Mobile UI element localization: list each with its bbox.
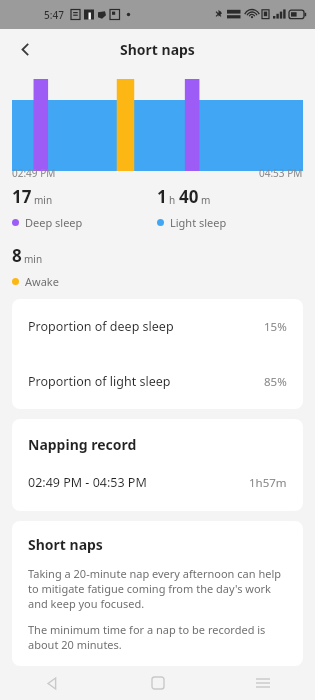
staticText: min: [24, 252, 43, 266]
staticText: Short naps: [28, 535, 103, 554]
staticText: Awake: [25, 274, 59, 289]
button[interactable]: Proportion of deep sleep: [12, 299, 303, 354]
staticText: Napping record: [28, 435, 137, 454]
staticText: Proportion of deep sleep: [28, 318, 174, 335]
button[interactable]: 02:49 PM - 04:53 PM: [28, 474, 287, 491]
staticText: m: [201, 193, 211, 207]
staticText: Taking a 20-minute nap every afternoon c…: [28, 566, 287, 611]
staticText: 02:49 PM - 04:53 PM: [28, 474, 147, 491]
staticText: Deep sleep: [25, 215, 83, 230]
staticText: 15%: [264, 319, 287, 335]
staticText: min: [34, 193, 53, 207]
button[interactable]: Home: [105, 666, 210, 700]
staticText: Short naps: [120, 40, 195, 59]
staticText: 1: [157, 185, 167, 208]
staticText: 85%: [264, 374, 287, 390]
button[interactable]: Recent apps: [210, 666, 315, 700]
staticText: 40: [179, 185, 199, 208]
staticText: 17: [12, 185, 32, 208]
staticText: 04:53 PM: [259, 166, 303, 180]
button[interactable]: Proportion of light sleep: [12, 354, 303, 409]
staticText: Proportion of light sleep: [28, 373, 171, 390]
staticText: h: [169, 193, 176, 207]
staticText: 5:47: [44, 8, 64, 22]
button[interactable]: Back: [0, 666, 105, 700]
button[interactable]: Back: [6, 30, 44, 68]
staticText: 1h57m: [249, 475, 287, 491]
staticText: The minimum time for a nap to be recorde…: [28, 622, 287, 652]
staticText: 8: [12, 244, 22, 267]
staticText: 02:49 PM: [12, 166, 56, 180]
staticText: Light sleep: [170, 215, 227, 230]
